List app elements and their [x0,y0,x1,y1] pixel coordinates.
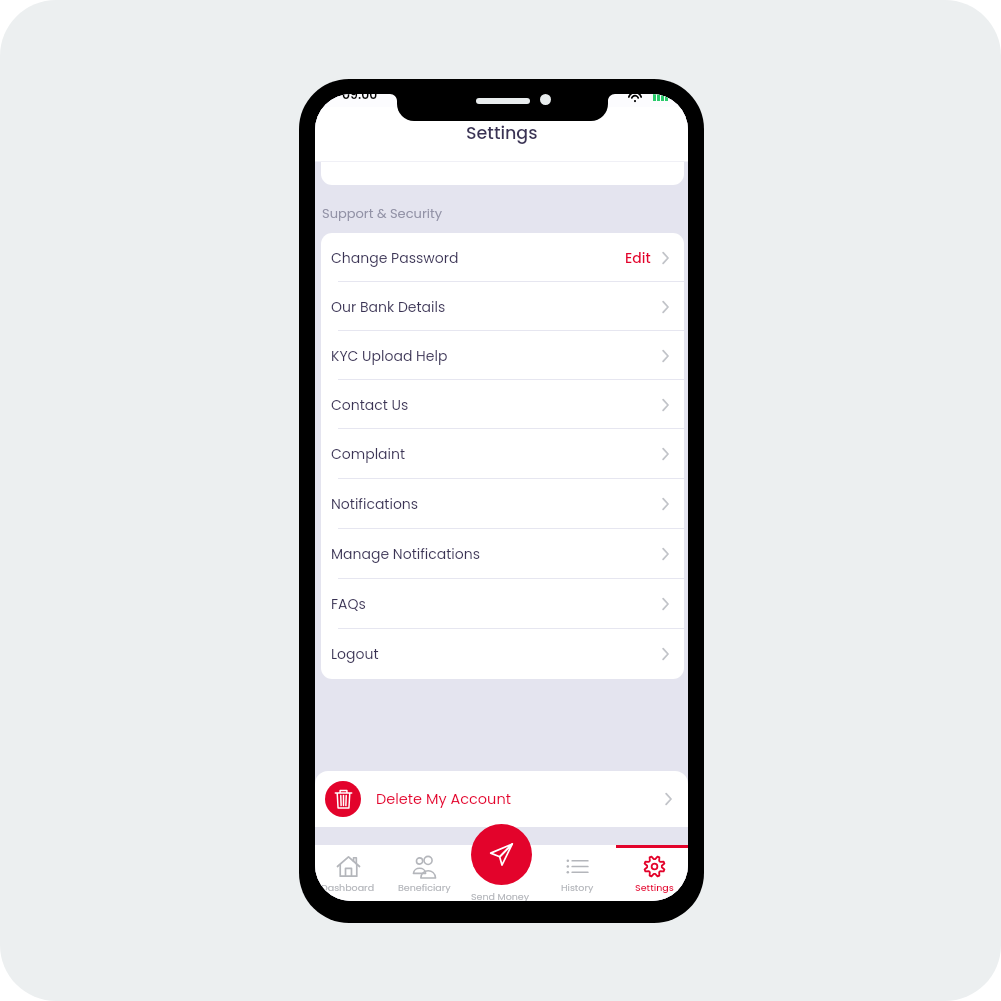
button[interactable]: Send Money [471,824,532,885]
staticText: Contact Us [331,395,409,415]
staticText: Edit [625,248,651,268]
button[interactable]: Manage Notifications [321,529,684,579]
button[interactable]: FAQs [321,579,684,629]
staticText: Notifications [331,494,419,514]
staticText: Dashboard [321,881,375,894]
button[interactable]: History [539,845,616,901]
staticText: Complaint [331,444,406,464]
staticText: KYC Upload Help [331,346,448,366]
staticText: History [561,881,594,894]
staticText: Our Bank Details [331,297,446,317]
button[interactable]: Logout [321,629,684,679]
staticText: Settings [466,121,538,146]
button[interactable]: Our Bank Details [321,282,684,331]
button[interactable]: Beneficiary [386,845,462,901]
button[interactable]: Dashboard [315,845,386,901]
button[interactable]: Delete My Account [315,771,688,827]
button[interactable]: Notifications [321,479,684,529]
staticText: Support & Security [322,204,442,222]
staticText: Send Money [471,890,530,901]
staticText: Settings [635,881,674,894]
staticText: Manage Notifications [331,544,480,564]
button[interactable]: KYC Upload Help [321,331,684,380]
staticText: Delete My Account [376,789,511,809]
staticText: FAQs [331,594,366,614]
staticText: Beneficiary [398,881,451,894]
staticText: Change Password [331,248,459,268]
button[interactable]: Change Password [321,233,684,282]
button[interactable]: Settings [616,845,688,901]
staticText: 09:00 [342,94,378,99]
button[interactable]: Complaint [321,429,684,479]
button[interactable]: Contact Us [321,380,684,429]
staticText: Logout [331,644,379,664]
